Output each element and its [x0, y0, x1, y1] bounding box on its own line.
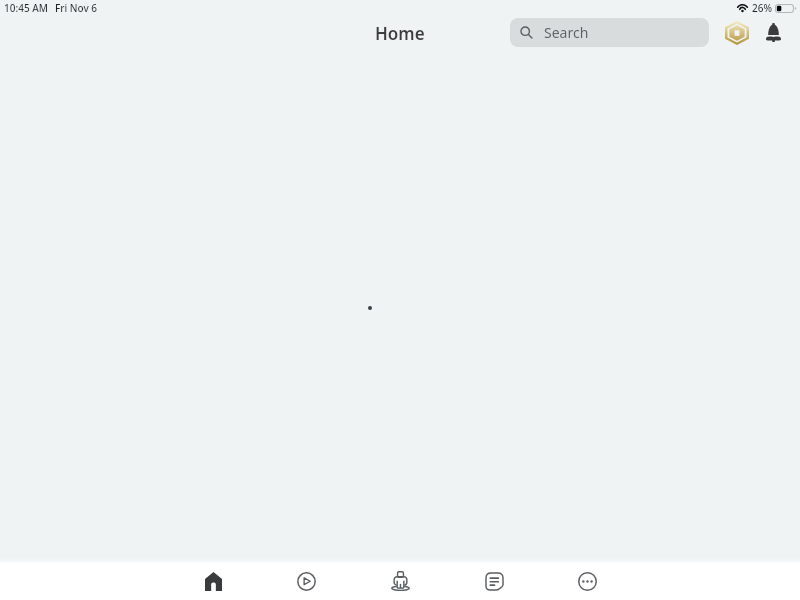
button[interactable]: Notifications — [759, 18, 788, 47]
button[interactable]: Chat — [463, 561, 525, 600]
staticText: 10:45 AM — [4, 1, 48, 15]
button[interactable]: Robux balance — [722, 18, 752, 48]
staticText: Fri Nov 6 — [55, 1, 98, 15]
button[interactable]: Search — [510, 18, 709, 47]
button[interactable]: Discover — [275, 561, 337, 600]
staticText: Home — [375, 22, 425, 45]
button[interactable]: More — [556, 561, 618, 600]
staticText: Search — [544, 23, 589, 42]
button[interactable]: Home — [182, 561, 244, 600]
staticText: 26% — [752, 1, 772, 15]
button[interactable]: Avatar — [369, 561, 431, 600]
